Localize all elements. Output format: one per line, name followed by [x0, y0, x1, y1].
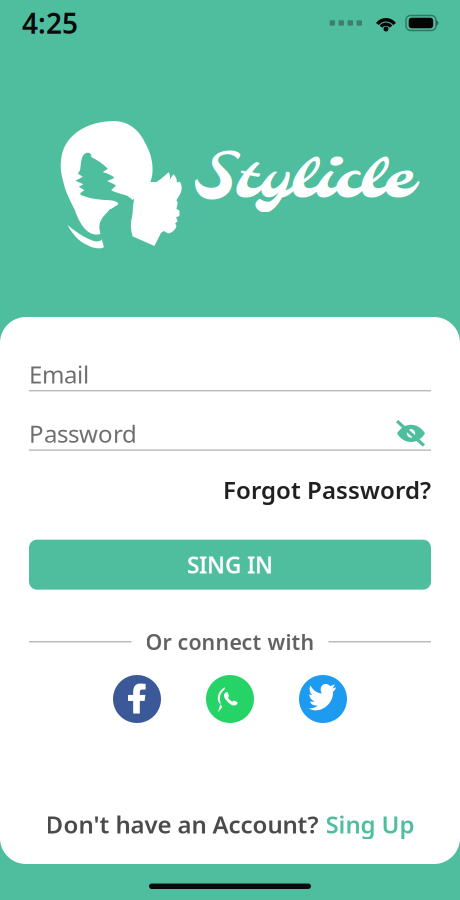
button[interactable]: Sign in with Facebook [107, 669, 167, 729]
button[interactable]: Show password [391, 417, 431, 449]
button[interactable]: Sign in with WhatsApp [200, 669, 260, 729]
staticText: Forgot Password? [223, 474, 431, 506]
staticText: Or connect with [145, 628, 314, 656]
button[interactable]: SING IN [29, 540, 431, 590]
staticText: Sing Up [325, 808, 414, 840]
staticText: SING IN [187, 550, 273, 580]
staticText: Don't have an Account? [45, 808, 318, 840]
button[interactable]: Don't have an Account? [29, 802, 431, 846]
staticText: 4:25 [22, 4, 78, 42]
button[interactable]: Sign in with Twitter [293, 669, 353, 729]
staticText: Email [29, 358, 89, 390]
staticText: Stylicle [193, 142, 412, 218]
staticText: Password [29, 417, 137, 449]
button[interactable]: Forgot Password? [213, 470, 431, 510]
